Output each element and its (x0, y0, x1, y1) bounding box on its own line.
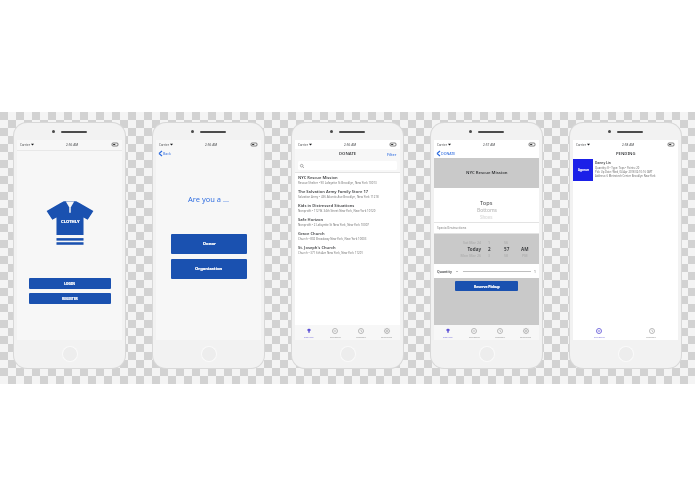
staticText: Sat Mar 24 (462, 240, 481, 245)
staticText: PENDING (330, 335, 341, 338)
staticText: Danny Lin (595, 161, 611, 165)
staticText: Rescue Shelter • 90 Lafayette St Brookly… (298, 181, 377, 185)
staticText: HISTORY (646, 335, 657, 338)
staticText: Carrier (159, 143, 169, 147)
staticText: 56 (504, 240, 509, 245)
staticText: DONATE (443, 335, 453, 338)
button[interactable]: Approve (573, 159, 678, 181)
staticText: Filter (387, 152, 397, 157)
staticText: DONATE (304, 335, 314, 338)
staticText: 1 (488, 240, 491, 245)
button[interactable]: HISTORY (348, 325, 374, 340)
button[interactable]: REGISTER (29, 293, 111, 304)
staticText: 2:58 AM (622, 143, 635, 147)
staticText: REGISTER (62, 296, 78, 301)
button[interactable]: PENDING (322, 325, 348, 340)
button[interactable]: HISTORY (625, 325, 678, 340)
staticText: Safe Horizon (298, 217, 324, 222)
staticText: St. Joseph's Church (298, 245, 336, 250)
button[interactable]: PENDING (461, 325, 487, 340)
button[interactable]: DONATE (437, 149, 539, 158)
staticText: Nonprofit • 112 W. 34th Street New York,… (298, 209, 376, 213)
staticText: Quantity (437, 269, 453, 274)
staticText: Special Instructions (437, 226, 467, 230)
button[interactable]: DONATE (434, 325, 461, 340)
button[interactable]: Reserve Pickup (455, 281, 518, 291)
button[interactable]: The Salvation Army Family Store 17 (295, 187, 400, 201)
staticText: PENDING (469, 335, 480, 338)
staticText: Salvation Army • 436 Atlantic Ave Brookl… (298, 195, 379, 199)
staticText: SETTINGS (520, 335, 532, 338)
button[interactable]: SETTINGS (374, 325, 400, 340)
staticText: 3 (488, 253, 491, 258)
staticText: Approve (578, 168, 589, 172)
button[interactable]: Search (300, 161, 395, 170)
button[interactable]: LOGIN (29, 278, 111, 289)
staticText: 2 (488, 246, 491, 252)
staticText: Carrier (576, 143, 586, 147)
staticText: Pick Up Date: Wed, 04 Apr 2018 02:10:16 … (595, 170, 653, 174)
button[interactable]: Donor (171, 234, 247, 254)
staticText: Are you a ... (188, 194, 230, 204)
button[interactable]: Back (159, 149, 261, 158)
button[interactable]: St. Joseph's Church (295, 243, 400, 257)
button[interactable]: SETTINGS (513, 325, 539, 340)
staticText: The Salvation Army Family Store 17 (298, 189, 369, 194)
staticText: PENDING (594, 335, 605, 338)
staticText: Back (163, 151, 171, 156)
staticText: DONATE (441, 151, 456, 156)
staticText: HISTORY (356, 335, 367, 338)
button[interactable]: DONATE (295, 325, 322, 340)
button[interactable]: Safe Horizon (295, 215, 400, 229)
staticText: Carrier (437, 143, 447, 147)
staticText: HISTORY (495, 335, 506, 338)
button[interactable]: Filter (387, 152, 397, 157)
staticText: CLOTHLY (61, 219, 80, 225)
staticText: LOGIN (64, 281, 76, 286)
staticText: 57 (504, 246, 510, 252)
staticText: Carrier (298, 143, 308, 147)
staticText: Quantity: 8 • Type: Tops • Points: 20 (595, 166, 640, 170)
staticText: PM (522, 253, 528, 258)
staticText: Shoes (480, 214, 493, 220)
staticText: 58 (504, 253, 509, 258)
button[interactable]: Kids in Distressed Situations (295, 201, 400, 215)
staticText: Address: 6 Metrotech Center Brooklyn New… (595, 174, 656, 178)
button[interactable]: Quantity slider (456, 268, 531, 274)
staticText: Bottoms (477, 207, 497, 214)
staticText: Reserve Pickup (474, 284, 500, 289)
staticText: 2:57 AM (483, 143, 496, 147)
staticText: DONATE (339, 151, 357, 157)
staticText: Mon Mar 26 (460, 253, 481, 258)
button[interactable]: Grace Church (295, 229, 400, 243)
staticText: 2:56 AM (205, 143, 218, 147)
button[interactable]: Organization (171, 259, 247, 279)
staticText: Church • 371 6th Ave New York, New York … (298, 251, 364, 255)
button[interactable]: PENDING (573, 325, 625, 340)
staticText: Church • 802 Broadway New York, New York… (298, 237, 367, 241)
staticText: AM (521, 246, 529, 252)
staticText: Organization (195, 266, 223, 272)
staticText: 2:56 AM (66, 143, 79, 147)
staticText: NYC Rescue Mission (298, 175, 338, 180)
staticText: PENDING (616, 151, 636, 157)
staticText: Donor (203, 241, 216, 247)
staticText: SETTINGS (381, 335, 393, 338)
button[interactable]: NYC Rescue Mission (295, 173, 400, 187)
staticText: Today (467, 246, 481, 252)
staticText: Carrier (20, 143, 30, 147)
staticText: NYC Rescue Mission (466, 170, 508, 176)
staticText: 1 (534, 269, 536, 274)
staticText: Kids in Distressed Situations (298, 203, 355, 208)
staticText: 2:56 AM (344, 143, 357, 147)
button[interactable]: Approve (573, 159, 593, 181)
staticText: Grace Church (298, 231, 325, 236)
button[interactable]: HISTORY (487, 325, 513, 340)
staticText: Nonprofit • 2 Lafayette St New York, New… (298, 223, 369, 227)
staticText: Tops (480, 199, 493, 207)
